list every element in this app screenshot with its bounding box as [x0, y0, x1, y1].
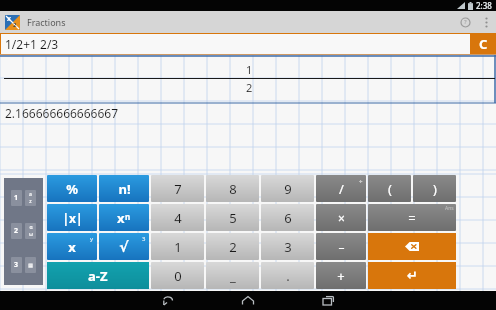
staticText: n!: [118, 180, 131, 198]
staticText: n: [125, 211, 131, 222]
button[interactable]: ): [413, 175, 456, 202]
button[interactable]: Backspace: [368, 233, 456, 260]
staticText: X: [7, 15, 12, 23]
staticText: x: [68, 238, 76, 256]
staticText: ?: [464, 18, 467, 26]
button[interactable]: x: [47, 233, 97, 260]
button[interactable]: 1: [11, 190, 22, 206]
staticText: 2: [229, 238, 237, 256]
staticText: C: [479, 35, 488, 53]
button[interactable]: a z: [25, 190, 36, 206]
button[interactable]: 5: [206, 204, 259, 231]
button[interactable]: 4: [151, 204, 204, 231]
button[interactable]: =: [368, 204, 456, 231]
staticText: Ans: [445, 205, 454, 212]
button[interactable]: .: [261, 262, 314, 289]
staticText: 1: [174, 238, 182, 256]
button[interactable]: α ω: [25, 223, 36, 239]
staticText: 2.166666666666667: [5, 105, 119, 121]
staticText: 2:38: [476, 0, 492, 11]
staticText: ): [433, 180, 437, 198]
staticText: 4: [174, 209, 182, 227]
button[interactable]: Back: [128, 291, 208, 310]
staticText: ÷: [359, 177, 363, 185]
staticText: 1/2+1 2/3: [5, 36, 59, 52]
button[interactable]: 9: [261, 175, 314, 202]
button[interactable]: X: [5, 15, 20, 30]
staticText: 2: [246, 80, 253, 95]
button[interactable]: C: [470, 33, 496, 55]
staticText: 5: [229, 209, 237, 227]
staticText: a-Z: [88, 267, 108, 285]
staticText: 6: [284, 209, 292, 227]
button[interactable]: |x|: [47, 204, 97, 231]
button[interactable]: Recent apps: [288, 291, 368, 310]
staticText: _: [230, 267, 236, 285]
button[interactable]: ▦: [25, 257, 36, 273]
staticText: α ω: [29, 224, 33, 238]
staticText: +: [337, 267, 345, 285]
staticText: /: [339, 180, 344, 198]
staticText: ×: [338, 210, 345, 226]
staticText: 7: [174, 180, 182, 198]
staticText: Fractions: [27, 16, 66, 28]
button[interactable]: 2: [206, 233, 259, 260]
staticText: y: [90, 235, 94, 243]
staticText: =: [408, 209, 416, 227]
staticText: 1: [246, 62, 253, 77]
button[interactable]: (: [368, 175, 411, 202]
staticText: .: [286, 267, 290, 285]
button[interactable]: 8: [206, 175, 259, 202]
staticText: 0: [174, 267, 182, 285]
button[interactable]: √: [99, 233, 149, 260]
button[interactable]: 2: [11, 223, 22, 239]
button[interactable]: More options: [476, 12, 496, 32]
button[interactable]: Enter: [368, 262, 456, 289]
staticText: 8: [229, 180, 237, 198]
staticText: 9: [284, 180, 292, 198]
staticText: %: [66, 180, 78, 198]
button[interactable]: Home: [208, 291, 288, 310]
button[interactable]: 7: [151, 175, 204, 202]
staticText: |x|: [62, 210, 83, 226]
button[interactable]: %: [47, 175, 97, 202]
staticText: 3: [142, 235, 146, 243]
staticText: –: [338, 239, 345, 255]
button[interactable]: 3: [11, 257, 22, 273]
button[interactable]: 3: [261, 233, 314, 260]
button[interactable]: n!: [99, 175, 149, 202]
button[interactable]: +: [316, 262, 366, 289]
staticText: √: [119, 239, 129, 255]
button[interactable]: /: [316, 175, 366, 202]
button[interactable]: –: [316, 233, 366, 260]
staticText: (: [388, 180, 392, 198]
staticText: 2: [14, 226, 19, 236]
staticText: 3: [284, 238, 292, 256]
staticText: x: [117, 209, 125, 227]
button[interactable]: 0: [151, 262, 204, 289]
button[interactable]: _: [206, 262, 259, 289]
staticText: a z: [29, 191, 32, 205]
staticText: ↵: [407, 268, 418, 283]
button[interactable]: x: [99, 204, 149, 231]
button[interactable]: a-Z: [47, 262, 149, 289]
staticText: 1: [14, 193, 19, 203]
staticText: 2: [13, 21, 17, 29]
staticText: ▦: [28, 262, 33, 268]
button[interactable]: 6: [261, 204, 314, 231]
button[interactable]: ×: [316, 204, 366, 231]
button[interactable]: 1: [151, 233, 204, 260]
staticText: 3: [14, 260, 19, 270]
button[interactable]: 1/2+1 2/3: [1, 34, 470, 54]
button[interactable]: Help: [454, 11, 476, 33]
